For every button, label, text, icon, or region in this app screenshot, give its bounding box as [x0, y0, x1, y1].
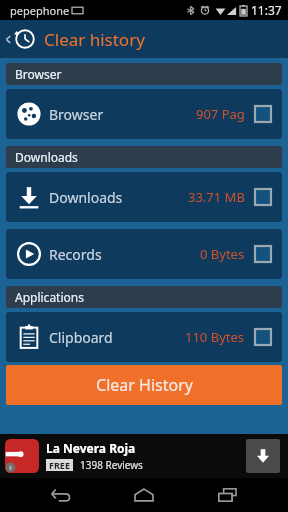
staticText: 0 Bytes	[200, 245, 245, 263]
staticText: 907 Pag	[196, 105, 245, 123]
staticText: 1398 Reviews	[80, 458, 143, 472]
button[interactable]: Select Clipboard	[254, 328, 272, 346]
button[interactable]: Recent apps	[205, 478, 251, 512]
button[interactable]: Back	[38, 478, 84, 512]
staticText: Browser	[49, 105, 104, 124]
staticText: 11:37	[251, 2, 282, 18]
staticText: Browser	[15, 66, 62, 82]
staticText: Downloads	[49, 188, 123, 207]
staticText: La Nevera Roja	[46, 440, 136, 456]
button[interactable]: Select Browser	[254, 105, 272, 123]
button[interactable]: La Nevera Roja	[0, 434, 288, 478]
button[interactable]: Browser	[6, 89, 282, 139]
button[interactable]: Select Downloads	[254, 188, 272, 206]
staticText: Clear History	[96, 374, 193, 396]
staticText: Records	[49, 245, 102, 264]
staticText: FREE	[49, 459, 70, 471]
button[interactable]: Home	[121, 478, 167, 512]
button[interactable]: Downloads	[6, 172, 282, 222]
button[interactable]: Records	[6, 229, 282, 279]
button[interactable]: Select Records	[254, 245, 272, 263]
staticText: 110 Bytes	[185, 328, 245, 346]
staticText: pepephone	[10, 3, 70, 18]
button[interactable]: Clipboard	[6, 312, 282, 362]
button[interactable]: Clear History	[6, 365, 282, 405]
staticText: Downloads	[15, 149, 78, 165]
staticText: Applications	[15, 289, 84, 305]
button[interactable]: Back	[0, 24, 38, 54]
staticText: Clear history	[44, 28, 145, 51]
staticText: 33.71 MB	[188, 188, 245, 206]
staticText: Clipboard	[49, 328, 113, 347]
button[interactable]: Install	[246, 439, 280, 473]
